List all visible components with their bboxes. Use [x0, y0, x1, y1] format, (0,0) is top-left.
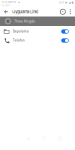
- button[interactable]: Help: [59, 7, 67, 16]
- staticText: Three Kingdo: [14, 19, 35, 23]
- staticText: 15:03 Pazartesi: [1, 1, 16, 4]
- staticText: 4 Kasim: [1, 4, 10, 7]
- button[interactable]: Back: [1, 7, 11, 16]
- staticText: Telefon: [13, 39, 25, 42]
- staticText: VoLTE: [59, 1, 64, 4]
- button[interactable]: Depolama: [0, 27, 75, 36]
- staticText: Depolama: [13, 30, 29, 33]
- button[interactable]: More options: [67, 7, 74, 16]
- button[interactable]: Telefon: [0, 36, 75, 45]
- staticText: Uygulama Linki: [12, 9, 38, 14]
